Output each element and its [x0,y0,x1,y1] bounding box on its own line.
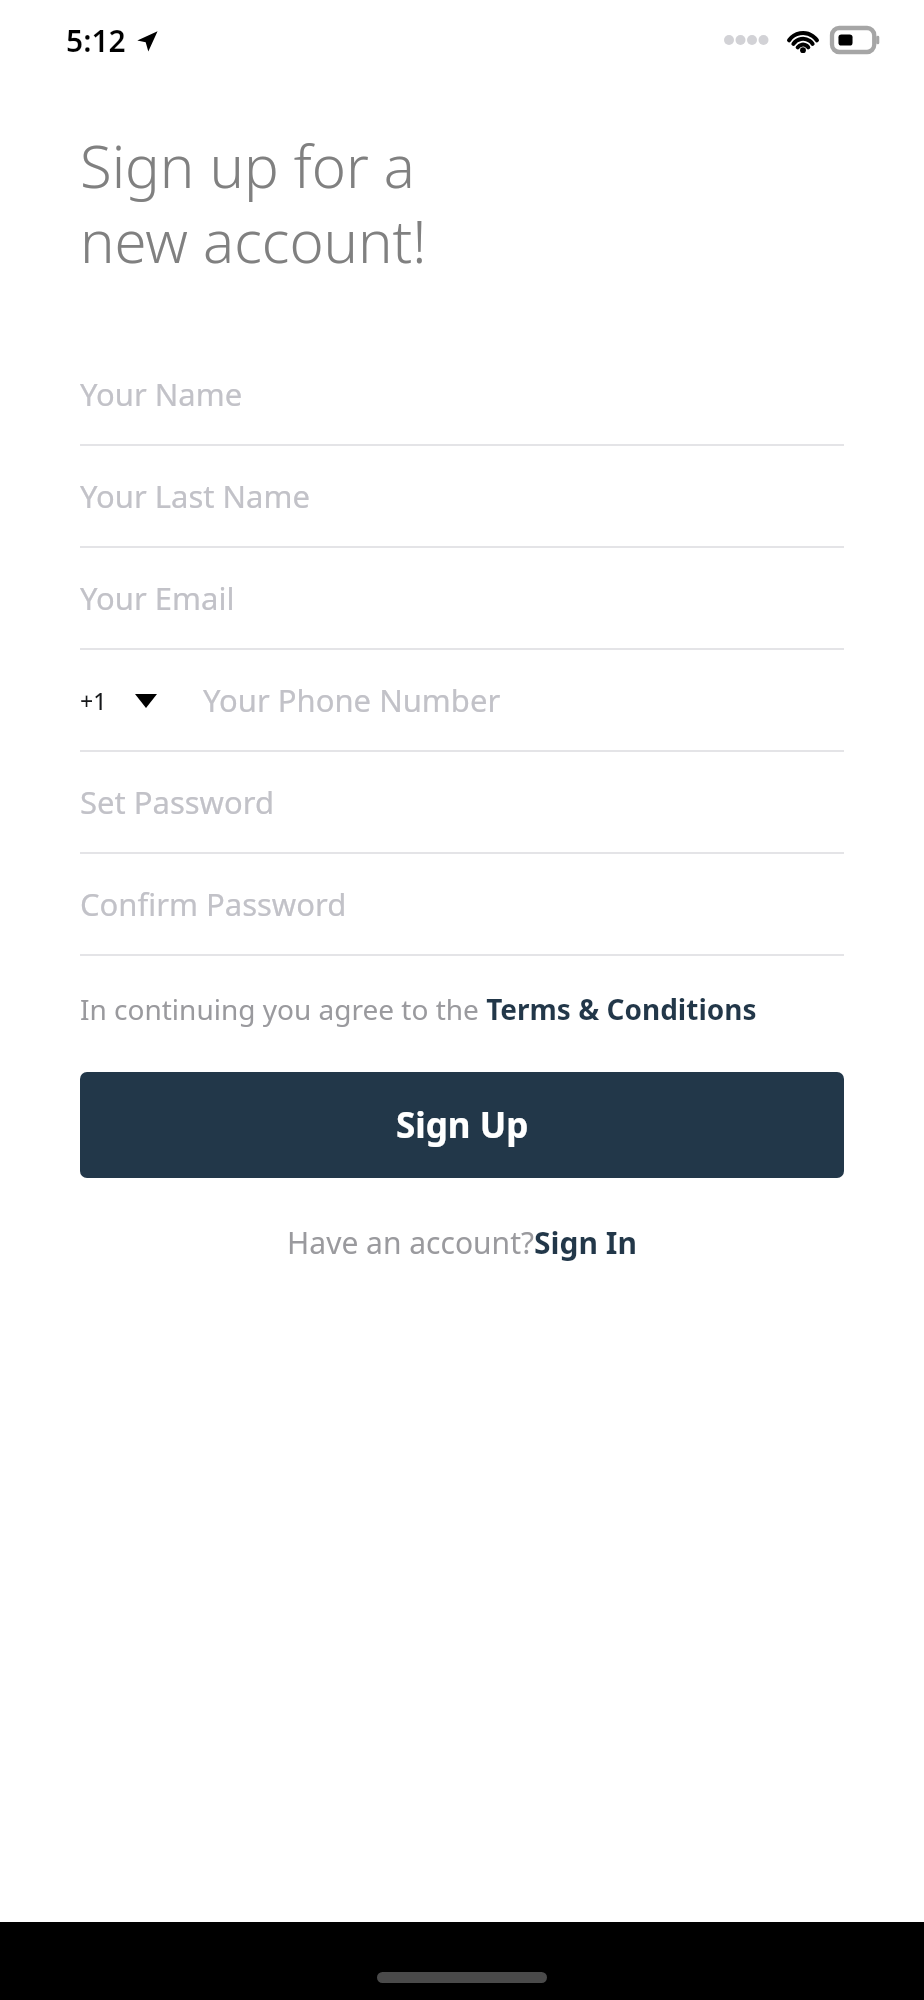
button[interactable]: In continuing you agree to the Terms & C… [80,990,757,1028]
button[interactable]: Select country code [80,685,157,716]
staticText: Confirm Password [80,883,347,925]
button[interactable]: Your Email [0,548,924,650]
staticText: 5:12 [66,20,126,61]
staticText: Your Email [80,577,235,619]
button[interactable]: Your Name [0,344,924,446]
button[interactable]: Your Phone Number [203,650,844,750]
button[interactable]: Have an account?Sign In [0,1222,924,1263]
button[interactable]: Sign Up [80,1072,844,1178]
staticText: +1 [80,685,107,716]
button[interactable]: Confirm Password [0,854,924,956]
staticText: Have an account?Sign In [287,1222,637,1263]
button[interactable]: Your Last Name [0,446,924,548]
staticText: In continuing you agree to the Terms & C… [80,990,757,1028]
staticText: Your Name [80,373,243,415]
staticText: Your Last Name [80,475,310,517]
staticText: Sign Up [396,1101,529,1149]
button[interactable]: Set Password [0,752,924,854]
staticText: Set Password [80,781,274,823]
staticText: Your Phone Number [203,679,501,721]
staticText: Sign up for a new account! [80,126,427,280]
